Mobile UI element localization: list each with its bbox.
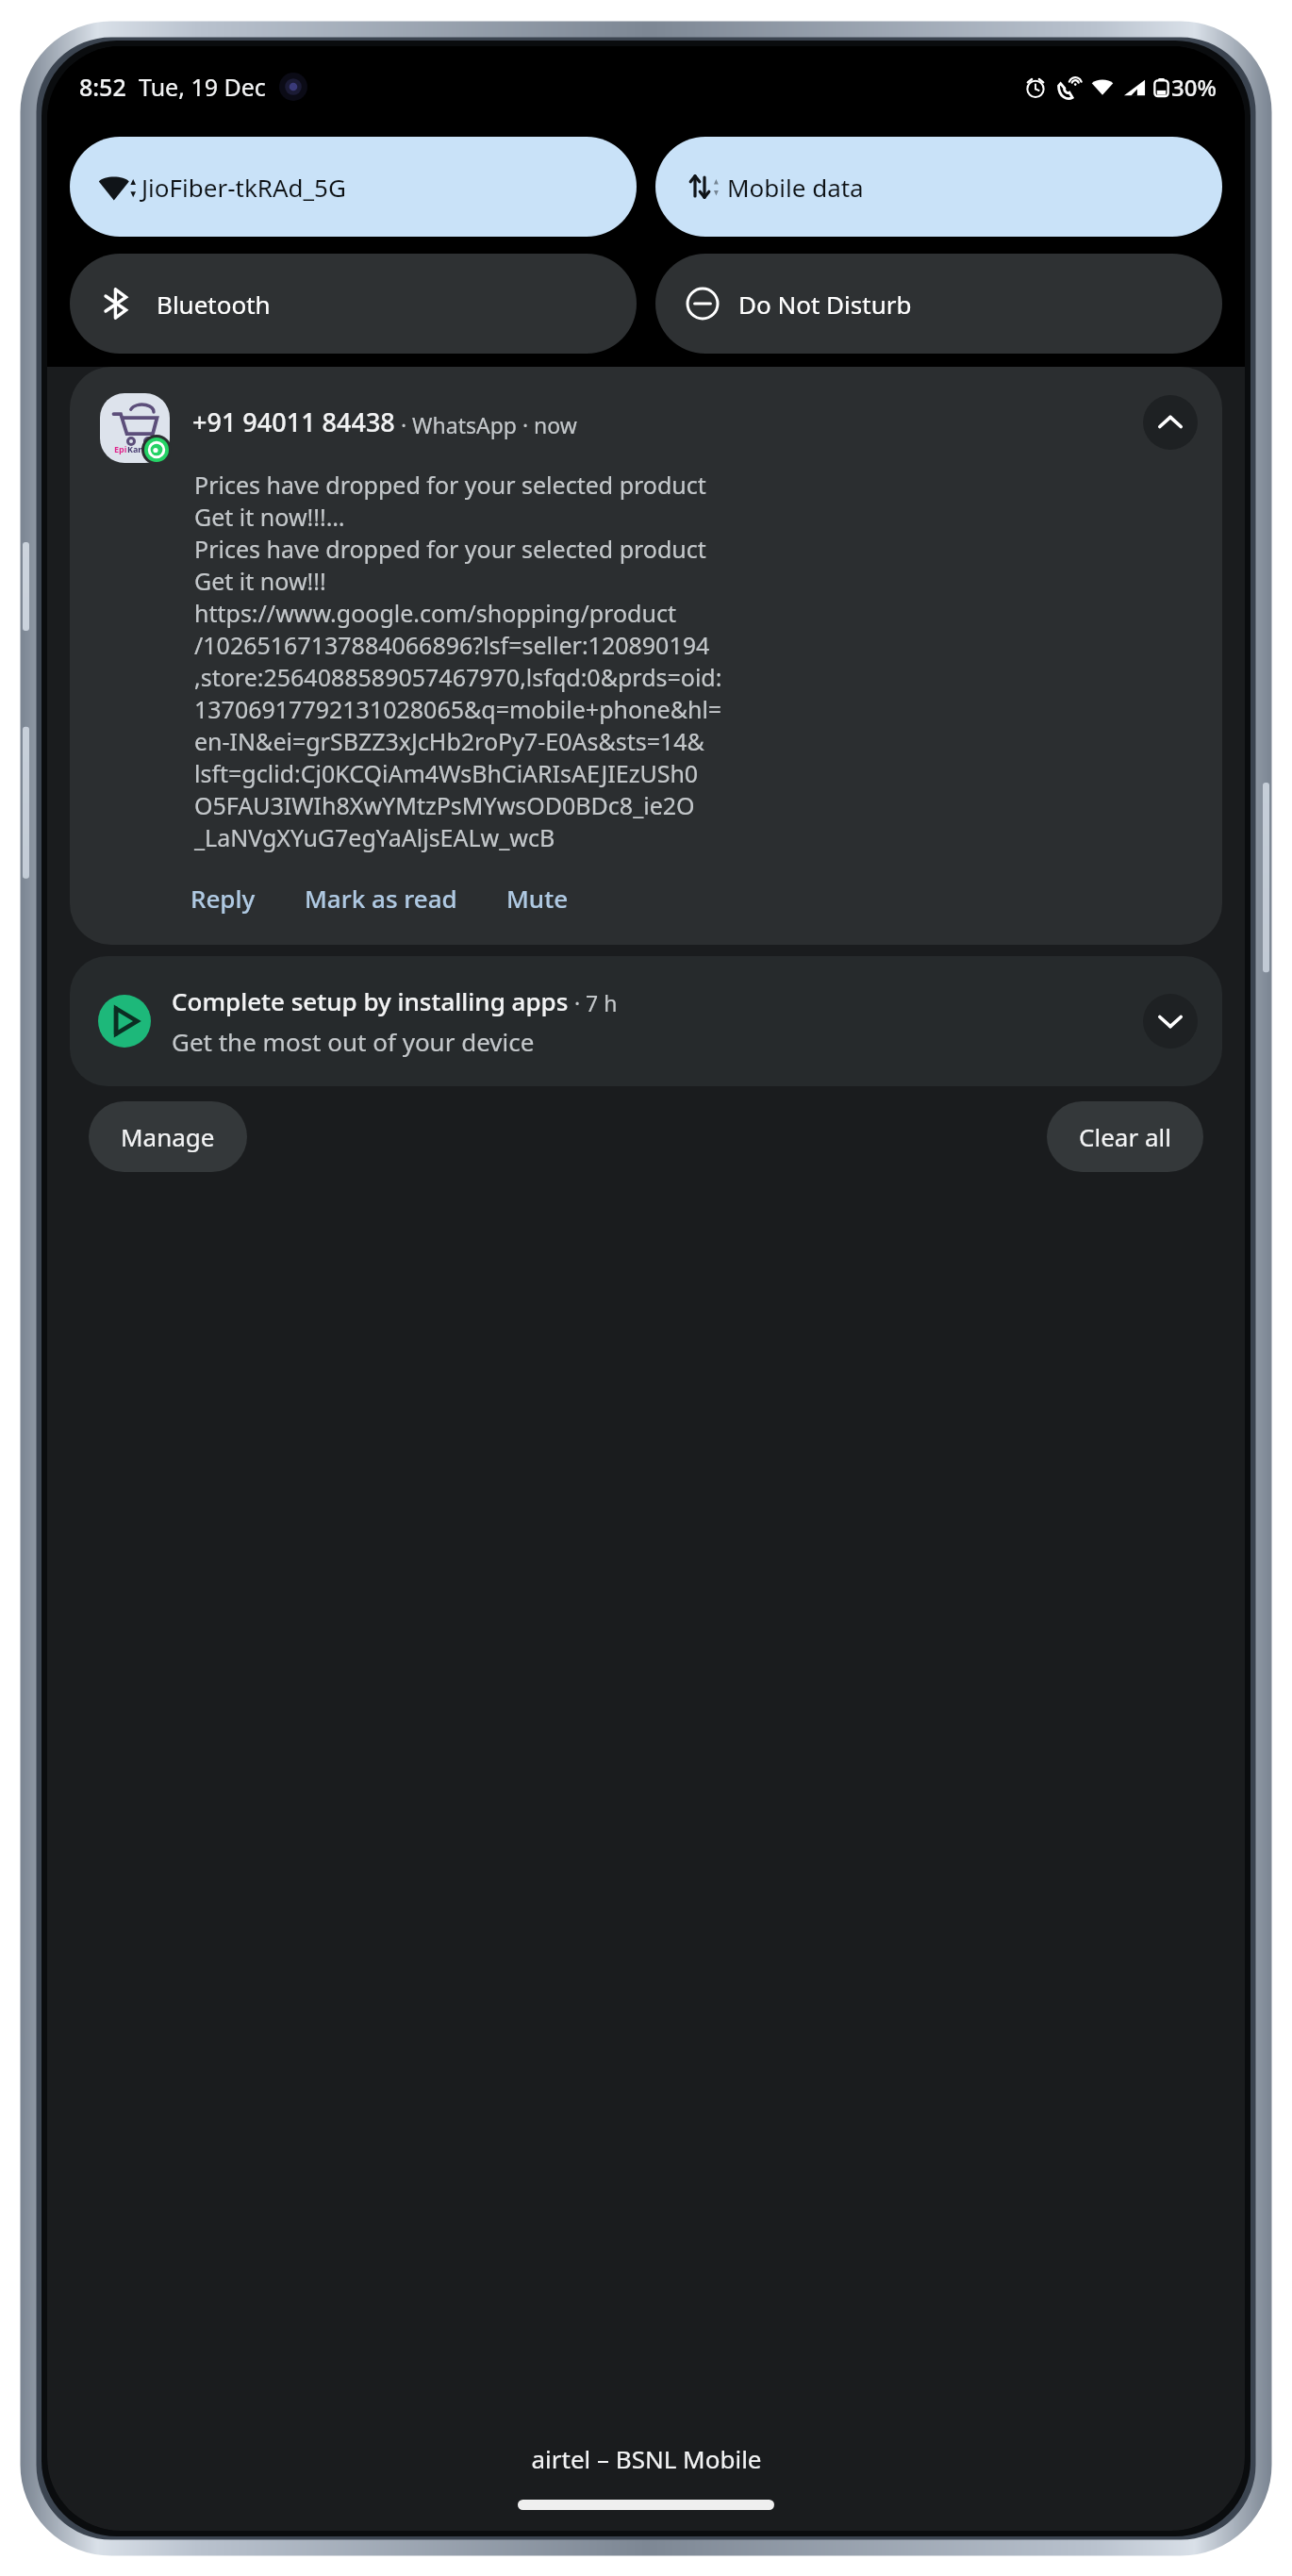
staticText: Complete setup by installing apps	[172, 984, 569, 1017]
staticText: O5FAU3IWIh8XwYMtzPsMYwsOD0BDc8_ie2O	[194, 789, 695, 821]
button[interactable]: Clear all	[1047, 1101, 1203, 1172]
button[interactable]: Epi	[70, 367, 1222, 945]
staticText: · 7 h	[569, 988, 618, 1017]
staticText: Tue, 19 Dec	[139, 71, 266, 103]
staticText: 30%	[1171, 72, 1217, 103]
staticText: Bluetooth	[157, 288, 271, 321]
staticText: _LaNVgXYuG7egYaAljsEALw_wcB	[194, 821, 555, 853]
staticText: en-IN&ei=grSBZZ3xJcHb2roPy7-E0As&sts=14&	[194, 725, 704, 757]
staticText: airtel – BSNL Mobile	[531, 2442, 762, 2475]
button[interactable]: Mute	[503, 878, 572, 918]
staticText: +91 94011 84438	[192, 405, 395, 439]
staticText: Mute	[506, 882, 569, 915]
staticText: Get the most out of your device	[172, 1025, 535, 1058]
button[interactable]: Collapse notification	[1143, 395, 1198, 450]
staticText: Mark as read	[305, 882, 457, 915]
button[interactable]: Mobile data	[655, 137, 1222, 237]
staticText: Epi	[114, 443, 127, 454]
staticText: Get it now!!!	[194, 565, 326, 597]
staticText: 8:52	[79, 71, 126, 103]
staticText: Prices have dropped for your selected pr…	[194, 533, 706, 565]
staticText: Prices have dropped for your selected pr…	[194, 469, 706, 501]
staticText: ,store:2564088589057467970,lsfqd:0&prds=…	[194, 661, 722, 693]
staticText: Do Not Disturb	[738, 288, 912, 321]
button[interactable]: Expand notification	[1143, 994, 1198, 1049]
staticText: Get it now!!!…	[194, 501, 345, 533]
staticText: 13706917792131028065&q=mobile+phone&hl=	[194, 693, 722, 725]
staticText: Mobile data	[727, 171, 864, 204]
staticText: Clear all	[1079, 1120, 1171, 1153]
button[interactable]: Do Not Disturb	[655, 254, 1222, 354]
button[interactable]: Manage	[89, 1101, 247, 1172]
staticText: JioFiber-tkRAd_5G	[141, 171, 346, 204]
button[interactable]: Bluetooth	[70, 254, 637, 354]
button[interactable]: Reply	[187, 878, 259, 918]
button[interactable]: Complete setup by installing apps	[70, 956, 1222, 1086]
staticText: https://www.google.com/shopping/product	[194, 597, 676, 629]
staticText: /10265167137884066896?lsf=seller:1208901…	[194, 629, 710, 661]
staticText: Manage	[121, 1120, 215, 1153]
staticText: lsft=gclid:Cj0KCQiAm4WsBhCiARIsAEJIEzUSh…	[194, 757, 699, 789]
button[interactable]: Mark as read	[301, 878, 461, 918]
staticText: Reply	[190, 882, 256, 915]
button[interactable]: JioFiber-tkRAd_5G	[70, 137, 637, 237]
staticText: Kart.in	[127, 443, 157, 454]
staticText: · WhatsApp · now	[395, 410, 577, 439]
